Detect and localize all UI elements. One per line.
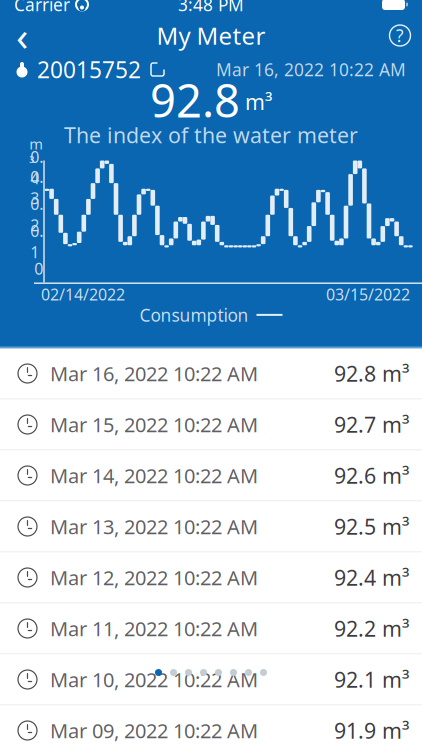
staticText: 92.6 m³ <box>334 461 409 490</box>
staticText: 92.4 m³ <box>334 563 409 592</box>
staticText: 92.8 <box>150 70 240 130</box>
button[interactable]: Mar 16, 2022 10:22 AM <box>0 348 422 399</box>
button[interactable]: Help <box>378 15 422 55</box>
staticText: 20015752 <box>37 54 141 84</box>
button[interactable]: Mar 13, 2022 10:22 AM <box>0 501 422 552</box>
staticText: Mar 13, 2022 10:22 AM <box>50 513 258 540</box>
button[interactable]: Mar 14, 2022 10:22 AM <box>0 450 422 501</box>
staticText: Mar 16, 2022 10:22 AM <box>216 58 406 81</box>
staticText: m³ <box>245 88 272 116</box>
staticText: Consumption <box>139 303 248 326</box>
staticText: Mar 12, 2022 10:22 AM <box>50 564 258 591</box>
staticText: 0.2 <box>30 193 43 236</box>
staticText: ‹ <box>16 9 28 62</box>
staticText: 0.1 <box>30 220 43 263</box>
button[interactable]: Mar 15, 2022 10:22 AM <box>0 399 422 450</box>
staticText: 03/15/2022 <box>326 284 410 305</box>
staticText: 3:48 PM <box>178 0 244 16</box>
staticText: 02/14/2022 <box>41 284 125 305</box>
staticText: Mar 10, 2022 10:22 AM <box>50 666 258 693</box>
staticText: Mar 15, 2022 10:22 AM <box>50 411 258 438</box>
staticText: ? <box>396 24 404 47</box>
button[interactable]: Mar 11, 2022 10:22 AM <box>0 603 422 654</box>
staticText: 92.2 m³ <box>334 614 409 643</box>
button[interactable]: Mar 09, 2022 10:22 AM <box>0 705 422 750</box>
staticText: Mar 14, 2022 10:22 AM <box>50 462 258 489</box>
staticText: Mar 09, 2022 10:22 AM <box>50 717 258 744</box>
staticText: 0.3 <box>30 166 43 209</box>
button[interactable]: Mar 12, 2022 10:22 AM <box>0 552 422 603</box>
staticText: 0 <box>34 258 43 279</box>
staticText: The index of the water meter <box>64 121 358 149</box>
staticText: 91.9 m³ <box>334 716 409 745</box>
staticText: Mar 16, 2022 10:22 AM <box>50 360 258 387</box>
staticText: Mar 11, 2022 10:22 AM <box>50 615 258 642</box>
staticText: My Meter <box>156 20 265 51</box>
staticText: 92.7 m³ <box>334 410 409 439</box>
staticText: 92.5 m³ <box>334 512 409 541</box>
button[interactable]: 20015752 <box>16 54 165 84</box>
staticText: m³ <box>29 134 43 173</box>
button[interactable]: Back <box>0 15 44 55</box>
staticText: Carrier <box>14 0 70 16</box>
staticText: 92.1 m³ <box>334 665 409 694</box>
staticText: 0.4 <box>30 146 43 189</box>
button[interactable]: Mar 10, 2022 10:22 AM <box>0 654 422 705</box>
staticText: 92.8 m³ <box>334 359 409 388</box>
